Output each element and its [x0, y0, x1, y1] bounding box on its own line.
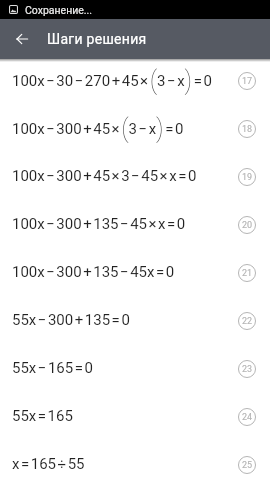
staticText: x = 165 ÷ 55 — [12, 455, 238, 473]
staticText: Сохранение... — [25, 4, 93, 16]
button[interactable]: 55x − 300 + 135 = 0 — [0, 296, 270, 344]
button[interactable]: Back — [0, 19, 40, 59]
other: Saving image — [9, 5, 18, 14]
button[interactable]: 55x = 165 — [0, 392, 270, 440]
staticText: 100x − 300 + 135 − 45x = 0 — [12, 263, 238, 281]
staticText: 18 — [242, 124, 253, 135]
staticText: 25 — [242, 460, 253, 471]
staticText: 19 — [242, 172, 253, 183]
button[interactable]: 100x − 300 + 135 − 45 × x = 0 — [0, 200, 270, 248]
staticText: 100x − 30 − 270 + 45 × (3 − x) = 0 — [12, 66, 238, 95]
staticText: 100x − 300 + 45 × (3 − x) = 0 — [12, 114, 238, 143]
staticText: 55x − 165 = 0 — [12, 359, 238, 377]
staticText: Шаги решения — [47, 31, 147, 47]
staticText: 100x − 300 + 135 − 45 × x = 0 — [12, 215, 238, 233]
staticText: 23 — [242, 364, 253, 375]
button[interactable]: 100x − 300 + 45 × 3 − 45 × x = 0 — [0, 152, 270, 200]
staticText: 21 — [242, 268, 253, 279]
staticText: 20 — [242, 220, 253, 231]
button[interactable]: x = 165 ÷ 55 — [0, 440, 270, 480]
staticText: 17 — [242, 76, 253, 87]
button[interactable]: 55x − 165 = 0 — [0, 344, 270, 392]
staticText: 22 — [242, 316, 253, 327]
staticText: 100x − 300 + 45 × 3 − 45 × x = 0 — [12, 167, 238, 185]
button[interactable]: 100x − 30 − 270 + 45 × (3 − x) = 0 — [0, 56, 270, 104]
staticText: 55x − 300 + 135 = 0 — [12, 311, 238, 329]
staticText: 24 — [242, 412, 253, 423]
button[interactable]: 100x − 300 + 45 × (3 − x) = 0 — [0, 104, 270, 152]
button[interactable]: 100x − 300 + 135 − 45x = 0 — [0, 248, 270, 296]
staticText: 55x = 165 — [12, 407, 238, 425]
